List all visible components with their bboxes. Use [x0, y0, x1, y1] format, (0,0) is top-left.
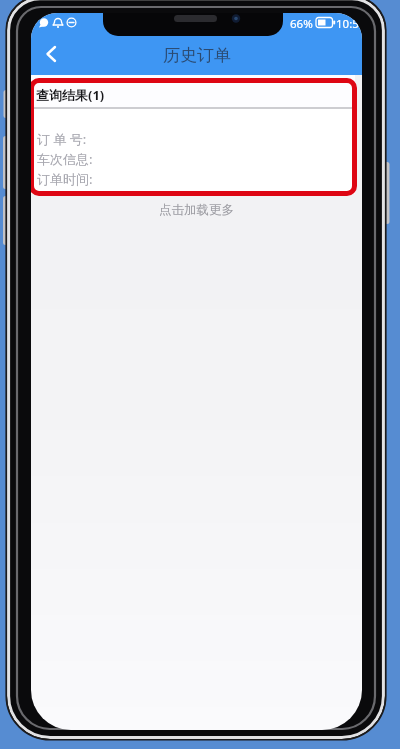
button[interactable]: 订 单 号:: [31, 109, 355, 194]
button[interactable]: 点击加载更多: [31, 200, 362, 220]
staticText: 历史订单: [163, 45, 231, 66]
staticText: 查询结果(1): [36, 86, 105, 104]
staticText: 订 单 号:: [37, 130, 87, 148]
staticText: 订单时间:: [37, 170, 93, 188]
staticText: 66%: [290, 16, 313, 32]
staticText: 点击加载更多: [159, 202, 234, 218]
button[interactable]: [37, 41, 67, 67]
staticText: 10:56: [336, 16, 362, 32]
staticText: 车次信息:: [37, 150, 93, 168]
